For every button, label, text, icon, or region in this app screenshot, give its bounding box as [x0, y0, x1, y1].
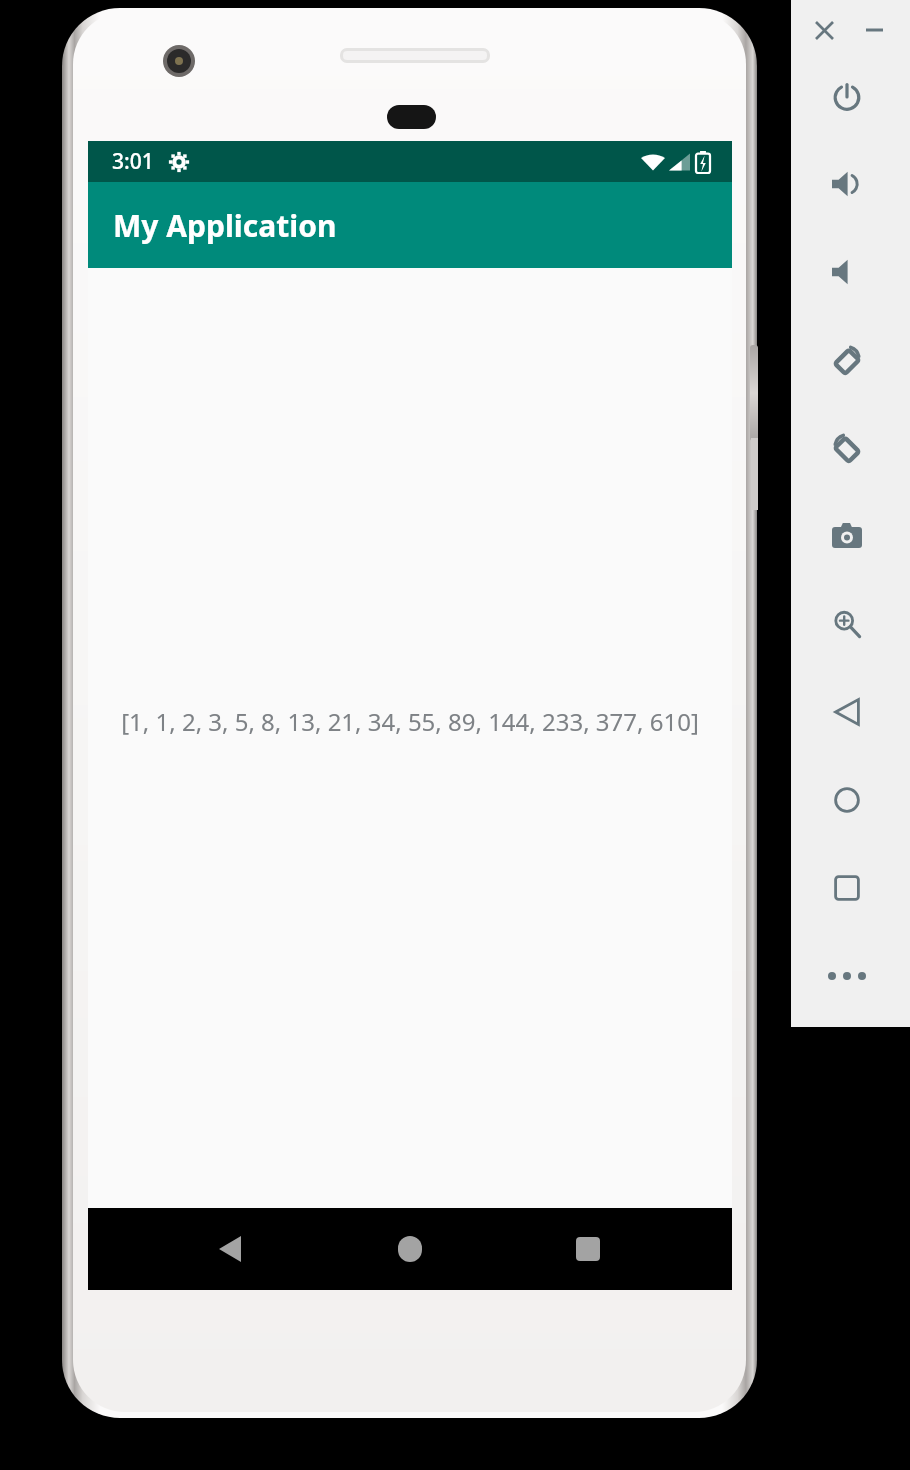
- button[interactable]: Recent apps: [556, 1217, 620, 1281]
- button[interactable]: Minimize: [856, 12, 892, 48]
- button[interactable]: Power: [819, 68, 875, 124]
- button[interactable]: Back: [819, 684, 875, 740]
- button[interactable]: Home: [378, 1217, 442, 1281]
- button[interactable]: Zoom: [819, 596, 875, 652]
- staticText: 3:01: [112, 147, 154, 176]
- button[interactable]: Recent apps: [819, 860, 875, 916]
- button[interactable]: Rotate right: [819, 420, 875, 476]
- staticText: My Application: [113, 205, 337, 246]
- button[interactable]: Home: [819, 772, 875, 828]
- button[interactable]: Rotate left: [819, 332, 875, 388]
- staticText: [1, 1, 2, 3, 5, 8, 13, 21, 34, 55, 89, 1…: [121, 705, 699, 738]
- button[interactable]: More: [819, 948, 875, 1004]
- button[interactable]: Volume up: [819, 156, 875, 212]
- button[interactable]: Back: [198, 1217, 262, 1281]
- button[interactable]: Take screenshot: [819, 507, 875, 563]
- button[interactable]: Volume down: [819, 244, 875, 300]
- button[interactable]: Close: [806, 12, 842, 48]
